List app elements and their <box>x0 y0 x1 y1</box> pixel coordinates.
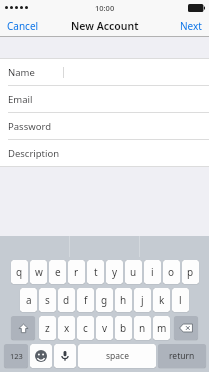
button[interactable]: n <box>134 316 151 340</box>
staticText: Next <box>180 19 202 33</box>
staticText: 123 <box>10 351 23 361</box>
button[interactable]: k <box>153 288 170 312</box>
button[interactable]: Next <box>173 16 209 36</box>
staticText: y <box>112 265 118 279</box>
staticText: j <box>141 293 144 307</box>
button[interactable]: m <box>153 316 170 340</box>
staticText: Email <box>8 93 33 106</box>
button[interactable]: space <box>78 344 156 368</box>
button[interactable]: Delete <box>174 316 198 340</box>
button[interactable]: 123 <box>4 344 28 368</box>
staticText: l <box>179 293 182 307</box>
button[interactable]: o <box>163 260 180 284</box>
staticText: Name <box>8 66 35 79</box>
staticText: n <box>139 321 146 335</box>
button[interactable]: z <box>39 316 56 340</box>
button[interactable]: f <box>77 288 94 312</box>
button[interactable]: d <box>58 288 75 312</box>
button[interactable]: j <box>134 288 151 312</box>
staticText: r <box>74 265 79 279</box>
button[interactable]: r <box>68 260 85 284</box>
button[interactable]: s <box>39 288 56 312</box>
staticText: s <box>45 293 50 307</box>
button[interactable]: Password <box>0 113 209 139</box>
staticText: m <box>157 321 167 335</box>
staticText: k <box>159 293 165 307</box>
button[interactable]: q <box>11 260 28 284</box>
staticText: Password <box>8 120 51 133</box>
button[interactable]: p <box>182 260 199 284</box>
button[interactable]: Emoji <box>30 344 52 368</box>
staticText: w <box>35 265 43 279</box>
staticText: a <box>26 293 32 307</box>
button[interactable]: y <box>106 260 123 284</box>
staticText: u <box>130 265 137 279</box>
button[interactable]: Description <box>0 140 209 166</box>
staticText: h <box>120 293 127 307</box>
staticText: c <box>83 321 88 335</box>
button[interactable]: b <box>115 316 132 340</box>
staticText: o <box>168 265 175 279</box>
staticText: space <box>106 350 129 362</box>
staticText: i <box>151 265 154 279</box>
button[interactable]: Email <box>0 86 209 112</box>
button[interactable]: w <box>30 260 47 284</box>
staticText: z <box>45 321 50 335</box>
button[interactable]: Cancel <box>0 16 46 36</box>
staticText: Description <box>8 147 60 160</box>
staticText: t <box>94 265 98 279</box>
staticText: 10:00 <box>95 3 115 13</box>
staticText: p <box>187 265 194 279</box>
button[interactable]: e <box>49 260 66 284</box>
staticText: e <box>55 265 61 279</box>
button[interactable]: u <box>125 260 142 284</box>
button[interactable]: v <box>96 316 113 340</box>
button[interactable]: Dictate <box>54 344 76 368</box>
staticText: g <box>101 293 108 307</box>
button[interactable]: x <box>58 316 75 340</box>
button[interactable]: t <box>87 260 104 284</box>
staticText: x <box>64 321 70 335</box>
button[interactable]: l <box>172 288 189 312</box>
staticText: b <box>120 321 127 335</box>
staticText: return <box>169 350 195 362</box>
staticText: New Account <box>71 19 139 33</box>
button[interactable]: a <box>20 288 37 312</box>
staticText: v <box>102 321 108 335</box>
staticText: d <box>63 293 70 307</box>
staticText: f <box>84 293 88 307</box>
button[interactable]: h <box>115 288 132 312</box>
staticText: Cancel <box>7 19 39 33</box>
button[interactable]: g <box>96 288 113 312</box>
button[interactable]: c <box>77 316 94 340</box>
button[interactable]: Name <box>0 59 209 85</box>
button[interactable]: i <box>144 260 161 284</box>
button[interactable]: return <box>158 344 206 368</box>
button[interactable]: Shift <box>11 316 35 340</box>
staticText: q <box>16 265 23 279</box>
